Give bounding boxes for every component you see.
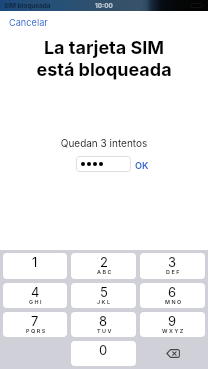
staticText: 4: [31, 284, 40, 300]
staticText: 9: [168, 313, 177, 329]
staticText: 0: [99, 342, 108, 358]
button[interactable]: Borrar: [140, 341, 205, 366]
button[interactable]: OK: [135, 160, 149, 171]
staticText: WXYZ: [162, 328, 185, 335]
staticText: 3: [168, 254, 177, 270]
staticText: DEF: [166, 269, 181, 276]
button[interactable]: 7: [3, 312, 67, 337]
button[interactable]: [76, 156, 131, 172]
staticText: ABC: [97, 269, 113, 276]
staticText: OK: [135, 160, 149, 171]
staticText: La tarjeta SIM está bloqueada: [0, 37, 208, 80]
staticText: 7: [31, 313, 39, 329]
staticText: 10:00: [95, 2, 113, 10]
staticText: 8: [99, 313, 108, 329]
staticText: 6: [168, 284, 177, 300]
button[interactable]: Cancelar: [9, 17, 48, 27]
button[interactable]: 8: [71, 312, 136, 337]
staticText: GHI: [29, 299, 44, 306]
staticText: MNO: [165, 299, 183, 306]
staticText: Quedan 3 intentos: [0, 137, 208, 149]
staticText: 2: [100, 254, 108, 270]
button[interactable]: 0: [71, 341, 136, 366]
button[interactable]: 6: [140, 283, 205, 308]
staticText: JKL: [97, 299, 112, 306]
button[interactable]: 4: [3, 283, 67, 308]
staticText: SIM bloqueada: [4, 2, 51, 10]
button[interactable]: 9: [140, 312, 205, 337]
button[interactable]: 1: [3, 253, 67, 279]
staticText: TUV: [97, 328, 113, 335]
staticText: Cancelar: [9, 17, 48, 27]
button[interactable]: 5: [71, 283, 136, 308]
button[interactable]: 3: [140, 253, 205, 279]
staticText: 5: [100, 284, 108, 300]
staticText: PQRS: [26, 328, 47, 335]
button[interactable]: 2: [71, 253, 136, 279]
staticText: 1: [32, 254, 38, 270]
